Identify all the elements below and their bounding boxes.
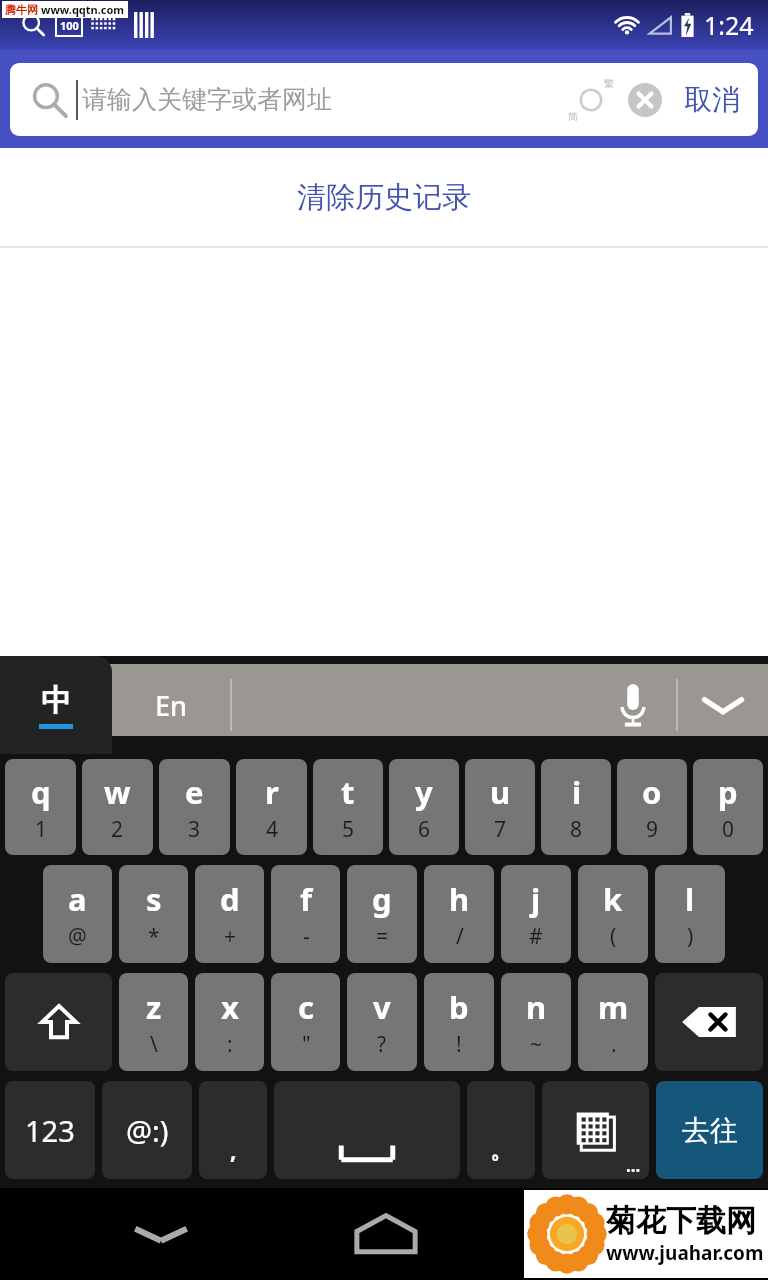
button[interactable]: b <box>424 973 494 1071</box>
staticText: : <box>227 1030 233 1059</box>
button[interactable]: 中 <box>0 656 112 754</box>
button[interactable]: 简繁切换 <box>568 77 614 123</box>
staticText: w <box>104 771 131 813</box>
button[interactable]: j <box>501 865 571 963</box>
button[interactable]: w <box>82 759 153 855</box>
button[interactable]: u <box>465 759 535 855</box>
button[interactable]: 123 <box>5 1081 95 1179</box>
staticText: 0 <box>722 815 735 844</box>
staticText: # <box>529 922 543 951</box>
staticText: www.qqtn.com <box>41 2 125 17</box>
button[interactable]: z <box>119 973 188 1071</box>
button[interactable]: 取消 <box>680 82 744 117</box>
staticText: u <box>490 771 511 813</box>
button[interactable]: c <box>271 973 340 1071</box>
button[interactable]: x <box>195 973 264 1071</box>
staticText: ( <box>610 922 617 951</box>
button[interactable]: m <box>578 973 648 1071</box>
button[interactable]: g <box>347 865 417 963</box>
button[interactable]: 主页 <box>342 1190 430 1278</box>
staticText: - <box>303 922 310 951</box>
staticText: g <box>372 878 392 920</box>
staticText: v <box>373 986 391 1028</box>
button[interactable]: 退格 <box>655 973 763 1071</box>
staticText: \ <box>150 1030 158 1059</box>
staticText: q <box>31 771 51 813</box>
button[interactable]: s <box>119 865 188 963</box>
staticText: 5 <box>342 815 355 844</box>
button[interactable]: 收起键盘 <box>678 656 768 754</box>
button[interactable]: 清除历史记录 <box>0 148 768 246</box>
button[interactable]: 清除 <box>624 79 666 121</box>
staticText: k <box>603 878 623 920</box>
button[interactable]: l <box>655 865 725 963</box>
staticText: 清除历史记录 <box>297 179 471 216</box>
staticText: * <box>148 922 160 951</box>
staticText: t <box>341 771 355 813</box>
staticText: 3 <box>188 815 201 844</box>
button[interactable]: n <box>501 973 571 1071</box>
staticText: c <box>298 986 314 1028</box>
staticText: 菊花下载网 <box>606 1202 756 1240</box>
button[interactable]: i <box>541 759 611 855</box>
button[interactable]: Shift <box>5 973 112 1071</box>
staticText: ~ <box>530 1030 543 1059</box>
button[interactable]: 去往 <box>656 1081 763 1179</box>
button[interactable]: 语音输入 <box>590 656 676 754</box>
staticText: 简 <box>568 110 578 123</box>
button[interactable]: t <box>313 759 383 855</box>
button[interactable]: k <box>578 865 648 963</box>
staticText: j <box>531 878 541 920</box>
button[interactable]: 空格 <box>274 1081 460 1179</box>
button[interactable]: y <box>389 759 459 855</box>
staticText: / <box>456 922 464 951</box>
staticText: 123 <box>25 1111 75 1150</box>
staticText: En <box>155 687 187 724</box>
staticText: l <box>685 878 695 920</box>
button[interactable]: 符号面板 <box>542 1081 649 1179</box>
staticText: 请输入关键字或者网址 <box>82 84 332 115</box>
staticText: " <box>302 1030 311 1059</box>
staticText: a <box>68 878 87 920</box>
staticText: f <box>300 878 312 920</box>
staticText: ... <box>626 1154 641 1177</box>
staticText: @ <box>68 922 87 951</box>
button[interactable]: o <box>617 759 687 855</box>
button[interactable]: En <box>112 656 230 754</box>
staticText: h <box>449 878 470 920</box>
button[interactable]: v <box>347 973 417 1071</box>
button[interactable]: q <box>5 759 76 855</box>
staticText: 繁 <box>604 77 614 90</box>
button[interactable]: d <box>195 865 264 963</box>
staticText: 4 <box>266 815 279 844</box>
staticText: 6 <box>418 815 431 844</box>
button[interactable]: f <box>271 865 340 963</box>
button[interactable]: 返回 <box>118 1191 204 1277</box>
button[interactable]: , <box>199 1081 267 1179</box>
staticText: 中 <box>41 682 71 720</box>
staticText: @:) <box>126 1111 169 1150</box>
button[interactable]: 请输入关键字或者网址 <box>10 63 758 136</box>
button[interactable]: e <box>159 759 230 855</box>
staticText: i <box>572 771 582 813</box>
staticText: p <box>718 771 738 813</box>
staticText: d <box>220 878 240 920</box>
button[interactable]: h <box>424 865 494 963</box>
staticText: 1:24 <box>704 8 754 42</box>
staticText: y <box>415 771 433 813</box>
button[interactable]: a <box>43 865 112 963</box>
staticText: 腾牛网 <box>5 3 38 17</box>
button[interactable]: p <box>693 759 763 855</box>
staticText: . <box>611 1030 617 1059</box>
staticText: 1 <box>35 815 48 844</box>
staticText: ! <box>456 1030 462 1059</box>
button[interactable]: 。 <box>467 1081 535 1179</box>
button[interactable]: r <box>236 759 307 855</box>
staticText: www.juahar.com <box>606 1240 764 1266</box>
button[interactable]: @:) <box>102 1081 192 1179</box>
staticText: 8 <box>570 815 583 844</box>
staticText: 。 <box>490 1136 513 1165</box>
staticText: x <box>221 986 239 1028</box>
staticText: s <box>146 878 162 920</box>
staticText: 去往 <box>682 1113 738 1148</box>
